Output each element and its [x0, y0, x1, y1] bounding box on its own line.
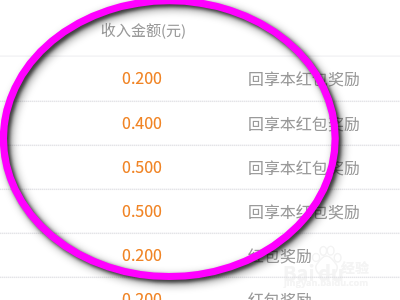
button[interactable]: 0.200 — [0, 56, 400, 100]
button[interactable]: 0.200 — [0, 233, 400, 277]
staticText: 0.200 — [122, 242, 162, 265]
staticText: jingyan.baidu.com — [284, 275, 368, 288]
staticText: 回享本红包奖励 — [248, 199, 361, 222]
staticText: 0.400 — [122, 110, 162, 133]
staticText: 红包奖励 — [248, 287, 313, 300]
staticText: 回享本红包奖励 — [248, 111, 361, 134]
button[interactable]: 0.500 — [0, 189, 400, 233]
staticText: 收入金额(元) — [101, 19, 187, 41]
button[interactable]: 0.400 — [0, 101, 400, 145]
staticText: Bai — [283, 258, 315, 287]
staticText: 回享本红包奖励 — [248, 66, 361, 89]
staticText: 0.200 — [122, 65, 162, 88]
staticText: 回享本红包奖励 — [248, 155, 361, 178]
button[interactable]: 收入金额(元) — [0, 0, 400, 56]
staticText: 经验 — [341, 257, 369, 277]
button[interactable]: 0.200 — [0, 277, 400, 300]
staticText: du — [318, 258, 344, 287]
button[interactable]: 0.500 — [0, 145, 400, 189]
staticText: 0.500 — [122, 154, 162, 177]
staticText: 0.200 — [122, 286, 162, 300]
staticText: 红包奖励 — [248, 243, 313, 266]
staticText: 0.500 — [122, 198, 162, 221]
